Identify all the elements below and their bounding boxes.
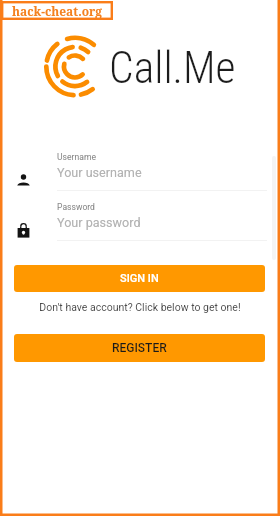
staticText: Username <box>57 152 96 162</box>
other: Password <box>16 221 31 239</box>
button[interactable]: REGISTER <box>14 334 265 362</box>
button[interactable]: Password <box>0 196 280 246</box>
staticText: hack-cheat.org <box>12 3 103 19</box>
staticText: Don't have account? Click below to get o… <box>0 301 280 313</box>
staticText: Your password <box>57 215 141 230</box>
button[interactable]: SIGN IN <box>14 265 265 292</box>
button[interactable]: Username <box>0 146 280 196</box>
staticText: REGISTER <box>112 341 167 355</box>
staticText: Password <box>57 202 95 212</box>
other: Username <box>16 171 31 189</box>
staticText: SIGN IN <box>120 272 159 285</box>
staticText: Your username <box>57 165 142 180</box>
staticText: Call.Me <box>109 43 236 94</box>
